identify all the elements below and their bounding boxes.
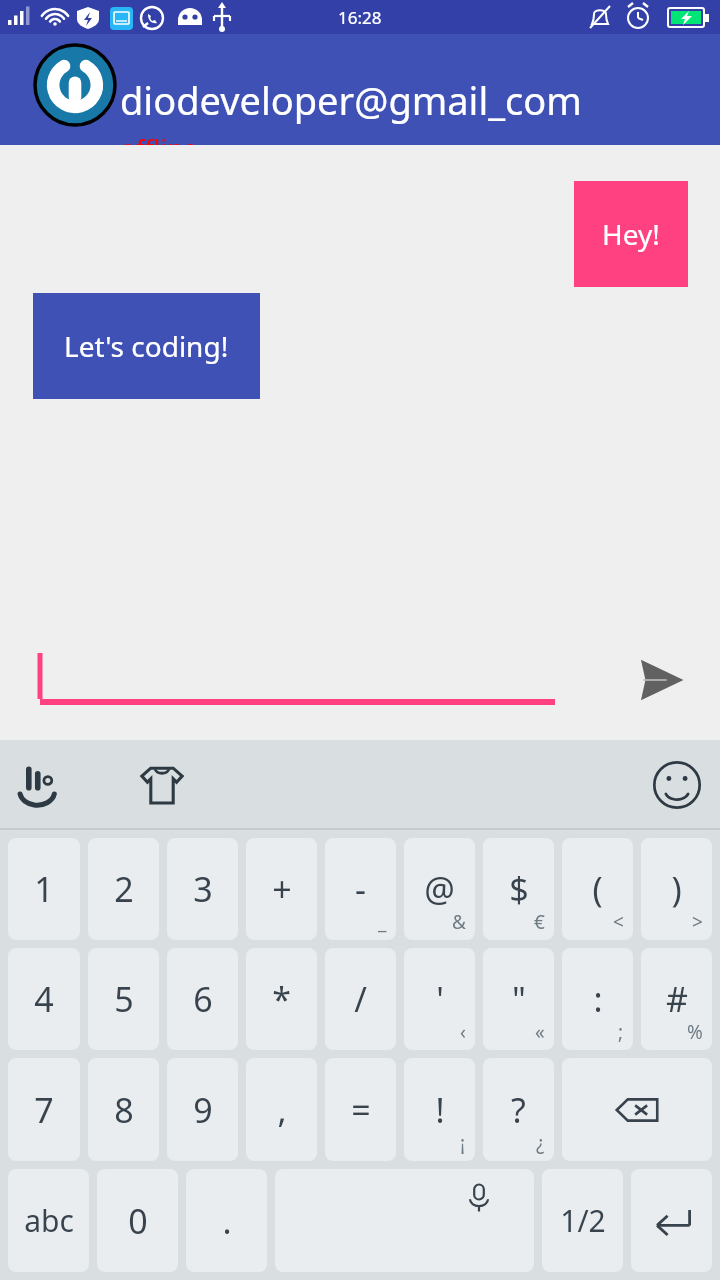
staticText: +	[272, 866, 292, 912]
button[interactable]	[40, 645, 555, 715]
staticText: %	[687, 1019, 703, 1045]
staticText: "	[512, 976, 526, 1022]
button[interactable]: #	[641, 948, 712, 1050]
button[interactable]: 7	[8, 1058, 80, 1161]
button[interactable]: '	[404, 948, 475, 1050]
button[interactable]: 6	[167, 948, 238, 1050]
button[interactable]: 4	[8, 948, 80, 1050]
button[interactable]: -	[325, 838, 396, 940]
staticText: 0	[128, 1198, 148, 1244]
staticText: #	[666, 976, 688, 1022]
staticText: (	[592, 866, 603, 912]
button[interactable]: abc	[8, 1169, 89, 1272]
staticText: @	[424, 866, 455, 912]
staticText: -	[355, 866, 366, 912]
staticText: :	[593, 976, 603, 1022]
button[interactable]: :	[562, 948, 633, 1050]
staticText: 5	[114, 976, 134, 1022]
button[interactable]: 1/2	[542, 1169, 623, 1272]
button[interactable]: Let's coding!	[33, 293, 260, 399]
staticText: abc	[24, 1200, 74, 1241]
staticText: Hey!	[602, 215, 660, 253]
staticText: 2	[114, 866, 134, 912]
staticText: offline	[120, 130, 198, 145]
button[interactable]: ?	[483, 1058, 554, 1161]
button[interactable]: Profile avatar	[0, 34, 720, 145]
button[interactable]: Enter	[631, 1169, 712, 1272]
staticText: 4	[34, 976, 54, 1022]
button[interactable]: @	[404, 838, 475, 940]
button[interactable]: Themes	[134, 757, 190, 813]
staticText: €	[534, 909, 545, 935]
staticText: _	[378, 909, 387, 935]
staticText: 8	[114, 1087, 134, 1133]
button[interactable]: Space	[275, 1169, 534, 1272]
staticText: =	[351, 1087, 371, 1133]
button[interactable]: $	[483, 838, 554, 940]
staticText: diodeveloper@gmail_com	[120, 74, 582, 126]
button[interactable]: +	[246, 838, 317, 940]
button[interactable]: 8	[88, 1058, 159, 1161]
staticText: ¿	[536, 1130, 545, 1156]
staticText: 16:28	[338, 6, 382, 29]
button[interactable]: ,	[246, 1058, 317, 1161]
button[interactable]: Touch input	[12, 757, 68, 813]
button[interactable]: .	[186, 1169, 267, 1272]
button[interactable]: )	[641, 838, 712, 940]
button[interactable]: 9	[167, 1058, 238, 1161]
staticText: 9	[193, 1087, 213, 1133]
button[interactable]: 5	[88, 948, 159, 1050]
staticText: )	[671, 866, 682, 912]
button[interactable]: Emoji	[650, 758, 704, 812]
button[interactable]: 3	[167, 838, 238, 940]
staticText: $	[509, 866, 529, 912]
button[interactable]: Backspace	[562, 1058, 712, 1161]
button[interactable]: Send message	[632, 652, 688, 708]
staticText: '	[436, 976, 444, 1022]
staticText: 1	[34, 866, 54, 912]
staticText: <	[613, 909, 624, 935]
staticText: Let's coding!	[64, 327, 229, 365]
button[interactable]: Hey!	[574, 181, 688, 287]
button[interactable]: 0	[97, 1169, 178, 1272]
staticText: ?	[511, 1087, 526, 1133]
staticText: ;	[618, 1019, 624, 1045]
staticText: /	[354, 976, 367, 1022]
staticText: *	[272, 976, 291, 1022]
staticText: !	[435, 1087, 445, 1133]
button[interactable]: 2	[88, 838, 159, 940]
staticText: 3	[193, 866, 213, 912]
staticText: «	[535, 1019, 545, 1045]
staticText: ,	[277, 1087, 287, 1133]
other: Profile avatar	[33, 43, 117, 127]
staticText: 1/2	[560, 1200, 606, 1241]
staticText: ¡	[460, 1130, 466, 1156]
button[interactable]: /	[325, 948, 396, 1050]
staticText: &	[452, 909, 466, 935]
button[interactable]: 1	[8, 838, 80, 940]
staticText: 7	[34, 1087, 54, 1133]
staticText: >	[692, 909, 703, 935]
staticText: .	[222, 1198, 232, 1244]
button[interactable]: "	[483, 948, 554, 1050]
staticText: 6	[193, 976, 213, 1022]
button[interactable]: =	[325, 1058, 396, 1161]
button[interactable]: (	[562, 838, 633, 940]
staticText: ‹	[460, 1019, 466, 1045]
button[interactable]: *	[246, 948, 317, 1050]
button[interactable]: !	[404, 1058, 475, 1161]
